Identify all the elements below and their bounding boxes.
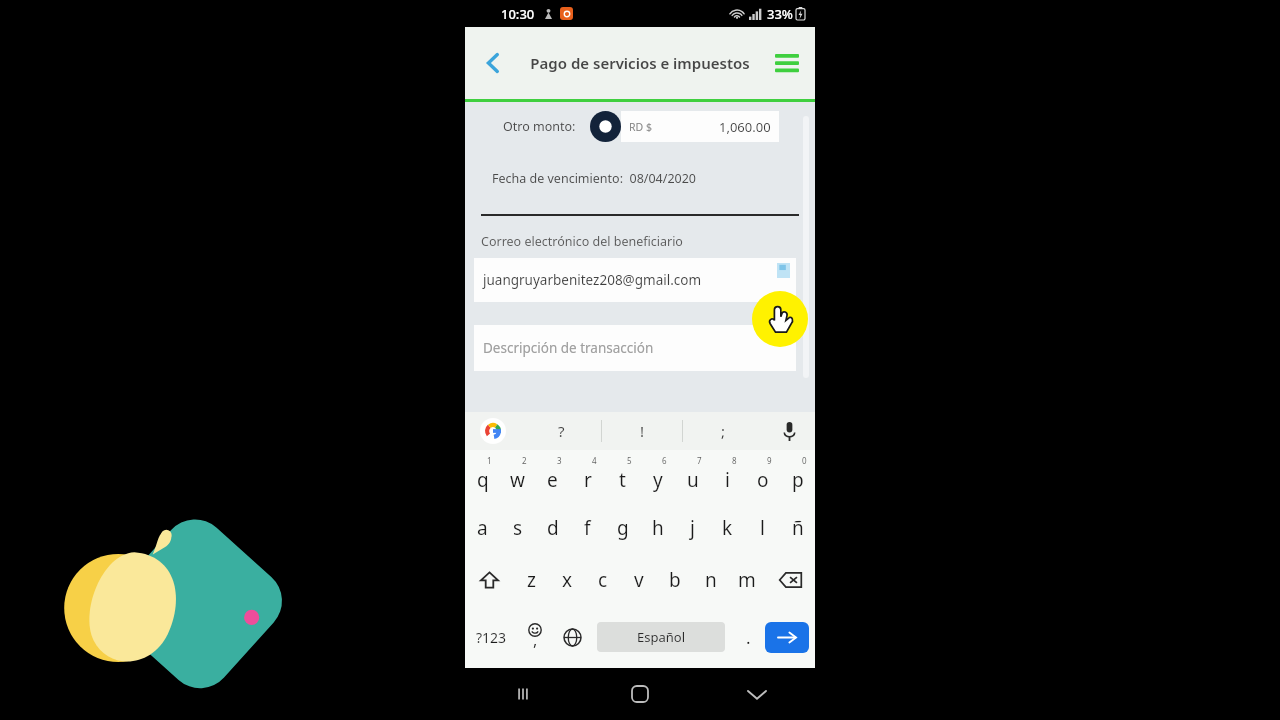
button[interactable]: Back (698, 668, 815, 720)
button[interactable]: Descripción de transacción (474, 325, 796, 371)
button[interactable]: k (710, 502, 745, 554)
button[interactable]: d (535, 502, 570, 554)
button[interactable]: juangruyarbenitez208@gmail.com (474, 258, 796, 302)
staticText: c (598, 567, 608, 593)
staticText: r (584, 467, 592, 493)
staticText: m (738, 567, 756, 593)
staticText: Correo electrónico del beneficiario (481, 233, 683, 250)
button[interactable]: g (605, 502, 640, 554)
staticText: 8 (732, 455, 737, 466)
staticText: i (725, 467, 730, 493)
button[interactable]: . (731, 606, 765, 668)
button[interactable]: Recents (465, 668, 581, 720)
staticText: b (669, 567, 681, 593)
staticText: Español (637, 628, 685, 646)
button[interactable]: ; (683, 412, 763, 450)
button[interactable]: 1 (465, 450, 500, 502)
staticText: q (477, 467, 489, 493)
staticText: 10:30 (501, 5, 535, 23)
button[interactable]: 2 (500, 450, 535, 502)
button[interactable]: Google (465, 412, 521, 450)
button[interactable]: v (621, 554, 657, 606)
button[interactable]: ñ (780, 502, 815, 554)
staticText: Otro monto: (503, 118, 576, 135)
button[interactable]: n (693, 554, 729, 606)
button[interactable]: 6 (640, 450, 675, 502)
staticText: l (760, 515, 765, 541)
button[interactable]: ?123 (465, 606, 517, 668)
button[interactable]: 3 (535, 450, 570, 502)
button[interactable]: j (675, 502, 710, 554)
staticText: t (619, 467, 626, 493)
staticText: 5 (627, 455, 632, 466)
button[interactable]: Change language (553, 606, 591, 668)
button[interactable]: s (500, 502, 535, 554)
staticText: z (527, 567, 536, 593)
staticText: Pago de servicios e impuestos (530, 53, 750, 73)
staticText: s (513, 515, 523, 541)
button[interactable]: Emoji (517, 606, 553, 668)
button[interactable]: c (585, 554, 621, 606)
staticText: 9 (767, 455, 772, 466)
staticText: d (547, 515, 559, 541)
staticText: o (757, 467, 769, 493)
staticText: e (547, 467, 558, 493)
staticText: a (477, 515, 488, 541)
staticText: 2 (522, 455, 527, 466)
button[interactable]: h (640, 502, 675, 554)
button[interactable]: Voice input (763, 412, 815, 450)
staticText: x (562, 567, 573, 593)
staticText: juangruyarbenitez208@gmail.com (483, 271, 702, 289)
staticText: Fecha de vencimiento: 08/04/2020 (492, 170, 696, 187)
staticText: 0 (802, 455, 807, 466)
staticText: Descripción de transacción (483, 339, 654, 357)
button[interactable]: f (570, 502, 605, 554)
button[interactable]: m (729, 554, 765, 606)
button[interactable]: 4 (570, 450, 605, 502)
button[interactable]: Shift (465, 554, 514, 606)
button[interactable]: x (549, 554, 585, 606)
staticText: 4 (592, 455, 597, 466)
button[interactable]: Enter (765, 622, 809, 653)
staticText: f (584, 515, 591, 541)
button[interactable]: a (465, 502, 500, 554)
button[interactable]: ? (521, 412, 601, 450)
button[interactable]: 0 (780, 450, 815, 502)
button[interactable]: z (514, 554, 549, 606)
staticText: . (746, 626, 751, 649)
staticText: ! (640, 421, 645, 441)
staticText: g (617, 515, 629, 541)
button[interactable]: 7 (675, 450, 710, 502)
staticText: ñ (792, 515, 804, 541)
button[interactable]: ! (602, 412, 682, 450)
staticText: ? (558, 421, 565, 441)
button[interactable]: 5 (605, 450, 640, 502)
staticText: y (653, 467, 663, 493)
button[interactable]: Menu (759, 27, 815, 99)
staticText: v (634, 567, 644, 593)
staticText: , (533, 629, 538, 651)
button[interactable]: l (745, 502, 780, 554)
staticText: k (722, 515, 733, 541)
staticText: w (510, 467, 525, 493)
button[interactable]: Back (465, 27, 521, 99)
staticText: u (687, 467, 699, 493)
staticText: p (792, 467, 804, 493)
button[interactable]: Home (581, 668, 698, 720)
staticText: 33% (767, 5, 793, 23)
staticText: 1 (487, 455, 492, 466)
staticText: ?123 (476, 628, 507, 647)
staticText: RD $ (629, 120, 652, 134)
button[interactable]: Español (597, 622, 725, 652)
staticText: 6 (662, 455, 667, 466)
staticText: h (652, 515, 664, 541)
staticText: 7 (697, 455, 702, 466)
staticText: 1,060.00 (719, 118, 771, 136)
button[interactable]: 9 (745, 450, 780, 502)
staticText: 3 (557, 455, 562, 466)
button[interactable]: Otro monto: (465, 108, 815, 144)
button[interactable]: Backspace (765, 554, 815, 606)
button[interactable]: 8 (710, 450, 745, 502)
button[interactable]: b (657, 554, 693, 606)
staticText: ; (721, 421, 726, 441)
